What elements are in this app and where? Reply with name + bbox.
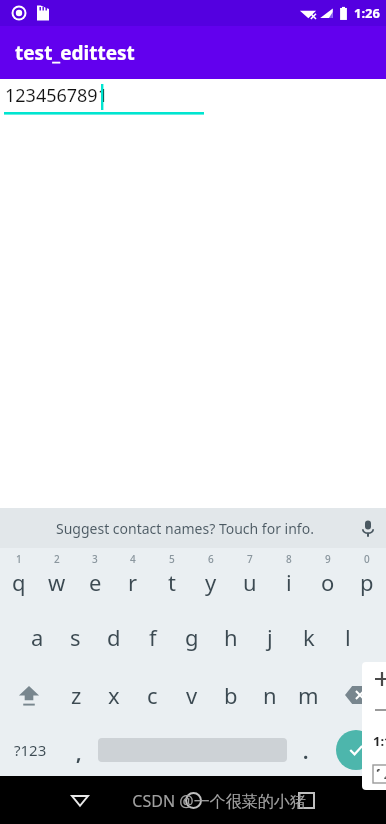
staticText: o <box>321 567 335 597</box>
staticText: f <box>149 622 157 652</box>
staticText: y <box>205 567 217 597</box>
staticText: , <box>76 740 82 766</box>
button[interactable]: 6 <box>191 548 230 608</box>
staticText: q <box>12 567 26 597</box>
staticText: j <box>267 622 273 652</box>
button[interactable]: m <box>289 666 328 724</box>
staticText: . <box>303 739 309 765</box>
staticText: w <box>48 567 66 597</box>
staticText: b <box>224 680 238 710</box>
button[interactable]: v <box>172 666 211 724</box>
button[interactable]: n <box>250 666 289 724</box>
staticText: test_edittest <box>15 40 135 66</box>
button[interactable]: 1234567891 <box>0 79 386 115</box>
button[interactable]: c <box>133 666 172 724</box>
button[interactable]: Suggest contact names? Touch for info. <box>0 508 386 548</box>
staticText: i <box>286 567 292 597</box>
staticText: CSDN @一个很菜的小猪 <box>132 790 306 812</box>
button[interactable]: 8 <box>269 548 308 608</box>
button[interactable]: Home <box>171 778 215 822</box>
staticText: m <box>298 680 319 710</box>
button[interactable]: d <box>94 608 133 666</box>
staticText: a <box>31 622 44 652</box>
button[interactable]: Backspace <box>328 666 386 724</box>
button[interactable]: b <box>211 666 250 724</box>
staticText: 7 <box>247 552 253 566</box>
button[interactable]: z <box>57 666 95 724</box>
button[interactable]: ?123 <box>0 724 60 776</box>
button[interactable]: h <box>211 608 250 666</box>
button[interactable]: g <box>172 608 211 666</box>
staticText: 0 <box>364 552 370 566</box>
staticText: 5 <box>169 552 175 566</box>
button[interactable]: 5 <box>152 548 191 608</box>
staticText: p <box>360 567 374 597</box>
staticText: n <box>263 680 277 710</box>
button[interactable]: Space <box>98 724 287 776</box>
staticText: 1:1 <box>373 732 386 750</box>
button[interactable]: Fit screen <box>362 758 386 790</box>
button[interactable]: 1:1 <box>362 724 386 758</box>
staticText: 6 <box>208 552 214 566</box>
staticText: Suggest contact names? Touch for info. <box>56 519 314 538</box>
staticText: 2 <box>54 552 60 566</box>
button[interactable]: 3 <box>76 548 114 608</box>
staticText: x <box>108 680 120 710</box>
staticText: 1:26 <box>354 4 380 22</box>
staticText: k <box>303 622 315 652</box>
button[interactable]: Shift <box>0 666 57 724</box>
button[interactable]: k <box>289 608 328 666</box>
staticText: h <box>224 622 238 652</box>
button[interactable]: 0 <box>347 548 386 608</box>
staticText: 1234567891 <box>5 83 108 108</box>
button[interactable]: Zoom out <box>362 696 386 724</box>
staticText: e <box>89 567 102 597</box>
button[interactable]: 7 <box>230 548 269 608</box>
button[interactable]: 4 <box>114 548 152 608</box>
button[interactable]: j <box>250 608 289 666</box>
staticText: 8 <box>286 552 292 566</box>
staticText: c <box>147 680 158 710</box>
button[interactable]: Voice input <box>350 508 386 548</box>
staticText: z <box>71 680 82 710</box>
button[interactable]: x <box>95 666 133 724</box>
staticText: v <box>186 680 198 710</box>
button[interactable]: Back <box>58 778 102 822</box>
button[interactable]: Recents <box>284 778 328 822</box>
button[interactable]: Zoom in <box>362 662 386 696</box>
button[interactable]: Zoom in <box>362 662 386 790</box>
button[interactable]: 2 <box>38 548 76 608</box>
button[interactable]: 9 <box>308 548 347 608</box>
staticText: 3 <box>92 552 98 566</box>
staticText: l <box>345 622 351 652</box>
button[interactable]: f <box>133 608 172 666</box>
button[interactable]: , <box>60 724 98 776</box>
staticText: s <box>70 622 81 652</box>
staticText: r <box>128 567 138 597</box>
staticText: ?123 <box>14 740 47 760</box>
staticText: 9 <box>325 552 331 566</box>
staticText: d <box>107 622 121 652</box>
staticText: u <box>243 567 257 597</box>
button[interactable]: l <box>328 608 367 666</box>
staticText: g <box>185 622 199 652</box>
staticText: 1 <box>16 552 22 566</box>
staticText: 4 <box>130 552 136 566</box>
button[interactable]: a <box>18 608 56 666</box>
button[interactable]: 1 <box>0 548 38 608</box>
button[interactable]: Enter <box>325 724 386 776</box>
button[interactable]: s <box>56 608 94 666</box>
staticText: t <box>168 567 176 597</box>
button[interactable]: . <box>287 724 325 776</box>
